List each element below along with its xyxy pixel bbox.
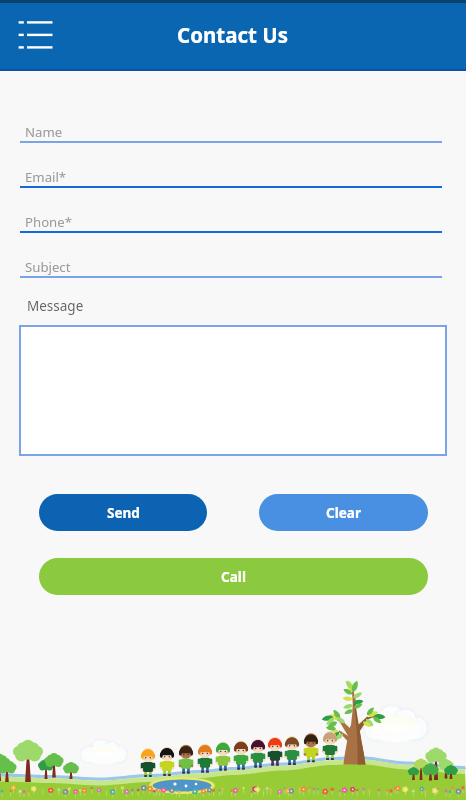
staticText: Contact Us bbox=[177, 21, 289, 49]
staticText: Send bbox=[107, 504, 140, 522]
staticText: Clear bbox=[326, 504, 361, 522]
button[interactable]: Call bbox=[39, 558, 428, 595]
button[interactable] bbox=[20, 326, 446, 455]
button[interactable]: Subject bbox=[0, 249, 466, 279]
staticText: Message bbox=[27, 297, 84, 315]
staticText: Name bbox=[25, 123, 63, 141]
staticText: Email* bbox=[25, 168, 67, 186]
button[interactable]: Send bbox=[39, 494, 207, 531]
staticText: Subject bbox=[25, 258, 71, 276]
button[interactable]: Menu bbox=[8, 9, 62, 63]
staticText: Phone* bbox=[25, 213, 72, 231]
button[interactable]: Clear bbox=[259, 494, 428, 531]
staticText: Call bbox=[221, 568, 246, 586]
button[interactable]: Phone* bbox=[0, 204, 466, 234]
button[interactable]: Email* bbox=[0, 159, 466, 189]
button[interactable]: Name bbox=[0, 114, 466, 144]
